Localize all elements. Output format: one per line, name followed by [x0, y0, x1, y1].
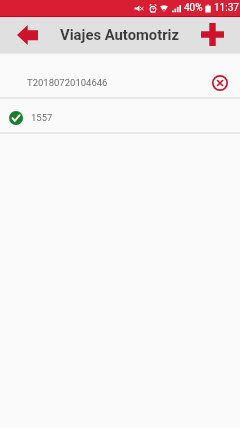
staticText: 11:37	[214, 2, 239, 14]
button[interactable]: 1557	[0, 99, 240, 132]
staticText: 1557	[31, 112, 53, 123]
button[interactable]: T20180720104646	[0, 64, 240, 97]
staticText: T20180720104646	[27, 77, 108, 88]
staticText: Viajes Automotriz	[60, 26, 180, 43]
button[interactable]: Back	[0, 17, 45, 52]
button[interactable]: Add	[195, 17, 240, 52]
staticText: 40%	[184, 2, 203, 14]
